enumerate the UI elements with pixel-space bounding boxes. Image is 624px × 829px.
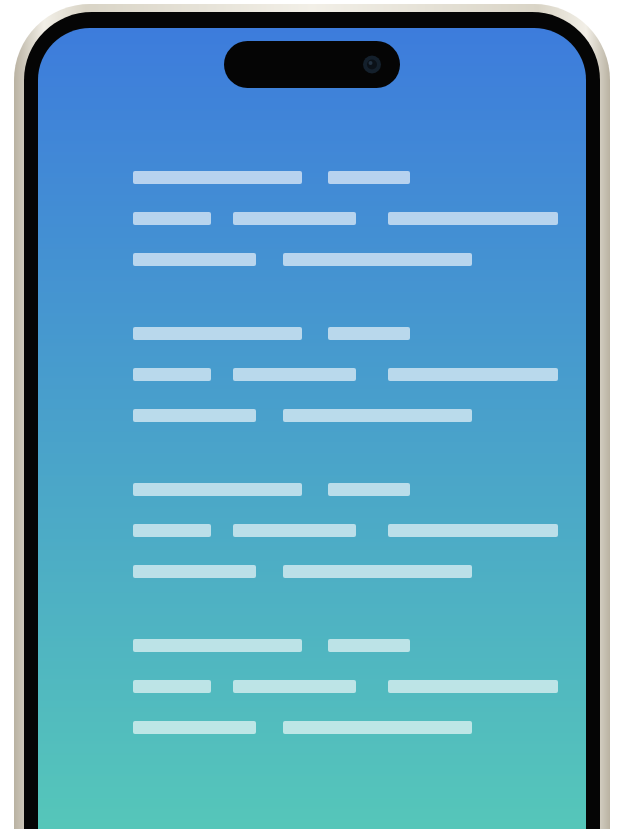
button[interactable]: Loading content xyxy=(38,171,586,829)
button[interactable]: Dynamic Island xyxy=(224,41,400,88)
